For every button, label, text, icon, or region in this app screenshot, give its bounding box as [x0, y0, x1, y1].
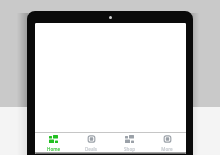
button[interactable]: More — [148, 133, 186, 152]
staticText: Shop — [124, 146, 135, 152]
staticText: More — [161, 146, 173, 152]
button[interactable]: Deals — [72, 133, 110, 152]
staticText: Home — [47, 146, 60, 152]
button[interactable]: Home — [35, 133, 72, 152]
other: Home — [49, 135, 58, 143]
other: Shop — [125, 135, 134, 143]
other: More — [163, 135, 172, 143]
other: Deals — [87, 135, 96, 143]
staticText: Deals — [85, 146, 97, 152]
button[interactable]: Shop — [110, 133, 148, 152]
